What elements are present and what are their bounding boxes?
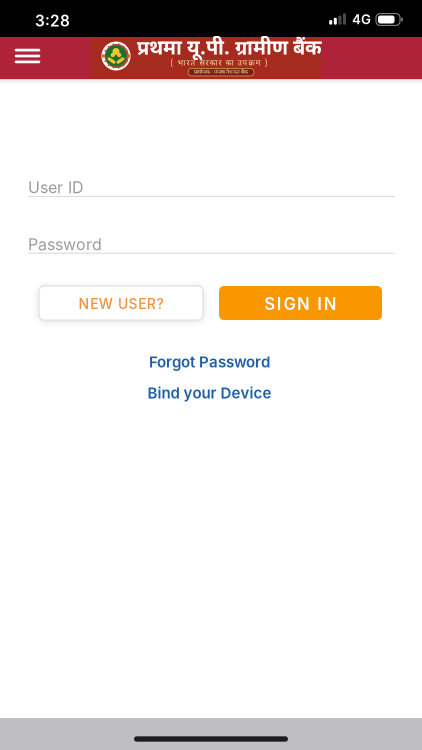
staticText: 4G bbox=[352, 11, 371, 27]
staticText: Forgot Password bbox=[149, 353, 270, 371]
staticText: प्रथमा यू.पी. ग्रामीण बैंक bbox=[137, 36, 322, 63]
button[interactable]: Forgot Password bbox=[149, 353, 270, 371]
staticText: प्रायोजक - पंजाब नैशनल बैंक bbox=[194, 69, 248, 76]
button[interactable]: User ID bbox=[28, 172, 395, 202]
staticText: Password bbox=[28, 235, 102, 254]
staticText: 3:28 bbox=[35, 12, 70, 30]
button[interactable]: Password bbox=[28, 229, 395, 259]
button[interactable]: Bind your Device bbox=[147, 384, 271, 402]
button[interactable]: Menu bbox=[9, 43, 46, 69]
staticText: Bind your Device bbox=[147, 384, 271, 402]
staticText: SIGN IN bbox=[264, 294, 337, 314]
staticText: NEW USER? bbox=[79, 295, 163, 312]
button[interactable]: NEW USER? bbox=[39, 286, 203, 320]
button[interactable]: SIGN IN bbox=[219, 286, 382, 320]
staticText: User ID bbox=[28, 178, 84, 197]
staticText: ( भारत सरकार का उपक्रम ) bbox=[170, 58, 267, 69]
